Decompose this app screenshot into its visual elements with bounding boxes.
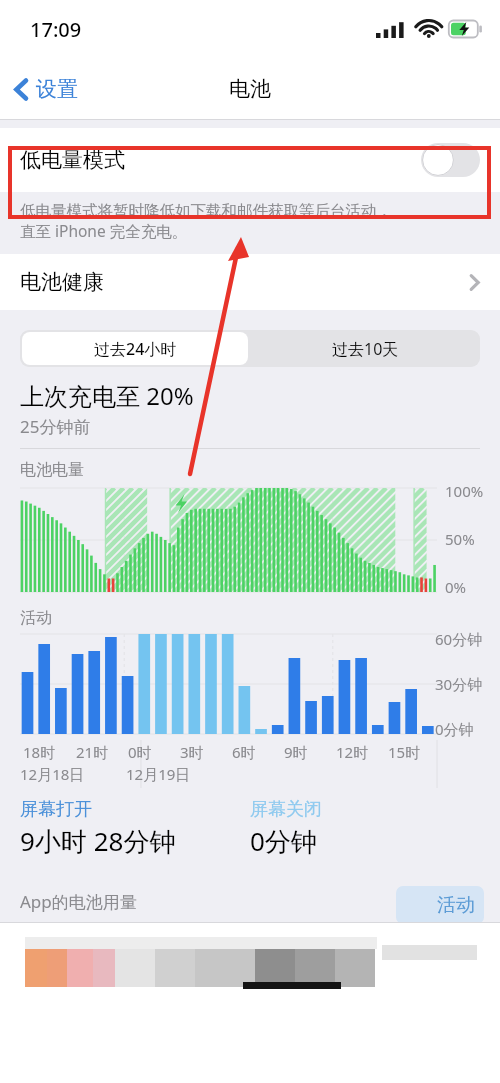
staticText: 12月18日 [20, 764, 85, 784]
staticText: 上次充电至 20% [20, 379, 194, 412]
button[interactable]: 活动 [396, 886, 484, 924]
staticText: 电池 [229, 76, 271, 102]
staticText: 0时 [128, 742, 152, 762]
staticText: 30分钟 [435, 674, 483, 694]
button[interactable]: Low Power Mode toggle, off [421, 143, 480, 177]
staticText: 屏幕关闭 [250, 798, 322, 821]
staticText: 6时 [232, 742, 256, 762]
staticText: 9小时 28分钟 [20, 823, 176, 859]
button[interactable]: 过去10天 [250, 330, 480, 367]
staticText: 12月19日 [126, 764, 191, 784]
button[interactable]: 设置 [0, 68, 92, 110]
staticText: 25分钟前 [20, 415, 91, 438]
staticText: 过去10天 [332, 338, 399, 360]
staticText: 过去24小时 [94, 338, 177, 360]
staticText: 电池电量 [20, 460, 84, 480]
staticText: 电池健康 [20, 269, 104, 295]
button[interactable]: 电池健康 [0, 254, 500, 310]
staticText: 100% [445, 481, 484, 501]
staticText: 15时 [388, 742, 421, 762]
staticText: 低电量模式将暂时降低如下载和邮件获取等后台活动， 直至 iPhone 完全充电。 [20, 201, 392, 242]
staticText: 12时 [336, 742, 369, 762]
staticText: 9时 [284, 742, 308, 762]
staticText: 屏幕打开 [20, 798, 92, 821]
staticText: 21时 [76, 742, 109, 762]
staticText: 活动 [20, 608, 52, 628]
staticText: 0% [445, 577, 467, 597]
staticText: 0分钟 [435, 719, 474, 739]
button[interactable]: 低电量模式 [0, 128, 500, 192]
staticText: 50% [445, 529, 475, 549]
button[interactable]: 过去24小时 [22, 332, 248, 365]
staticText: 18时 [23, 742, 56, 762]
staticText: 60分钟 [435, 629, 483, 649]
staticText: 设置 [36, 76, 78, 102]
staticText: 17:09 [30, 16, 82, 43]
staticText: 0分钟 [250, 823, 317, 859]
staticText: App的电池用量 [20, 890, 137, 913]
staticText: 3时 [180, 742, 204, 762]
staticText: 活动 [437, 893, 475, 917]
staticText: 低电量模式 [20, 147, 125, 173]
